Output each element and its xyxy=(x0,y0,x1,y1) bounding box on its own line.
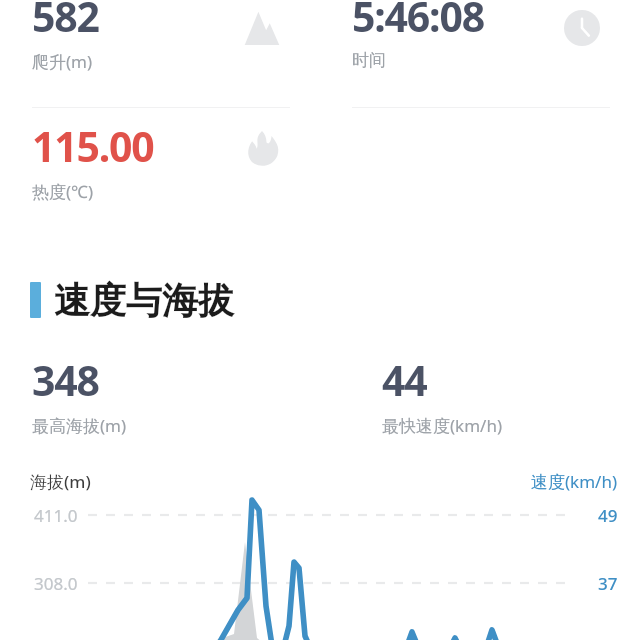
staticText: 582 xyxy=(32,0,99,44)
other: Heat xyxy=(244,130,280,166)
staticText: 爬升(m) xyxy=(32,50,93,73)
staticText: 411.0 xyxy=(34,504,78,527)
other: Elevation gain xyxy=(244,10,280,46)
staticText: 37 xyxy=(598,572,618,595)
staticText: 速度与海拔 xyxy=(54,278,234,323)
staticText: 海拔(m) xyxy=(30,470,91,493)
staticText: 时间 xyxy=(352,50,386,71)
other: Duration xyxy=(564,10,600,46)
button[interactable]: 速度与海拔 xyxy=(0,274,640,326)
staticText: 49 xyxy=(598,504,618,527)
staticText: 最高海拔(m) xyxy=(32,414,127,437)
staticText: 115.00 xyxy=(32,118,154,174)
staticText: 5:46:08 xyxy=(352,0,484,44)
staticText: 最快速度(km/h) xyxy=(382,414,503,437)
button[interactable]: 115.00 xyxy=(0,108,320,223)
staticText: 308.0 xyxy=(34,572,78,595)
button[interactable]: 348 xyxy=(0,352,320,437)
staticText: 44 xyxy=(382,352,427,408)
staticText: 速度(km/h) xyxy=(531,470,618,493)
button[interactable]: 582 xyxy=(0,0,320,108)
staticText: 热度(℃) xyxy=(32,180,94,203)
button[interactable]: 5:46:08 xyxy=(320,0,640,108)
button[interactable]: 44 xyxy=(320,352,640,437)
staticText: 348 xyxy=(32,352,99,408)
